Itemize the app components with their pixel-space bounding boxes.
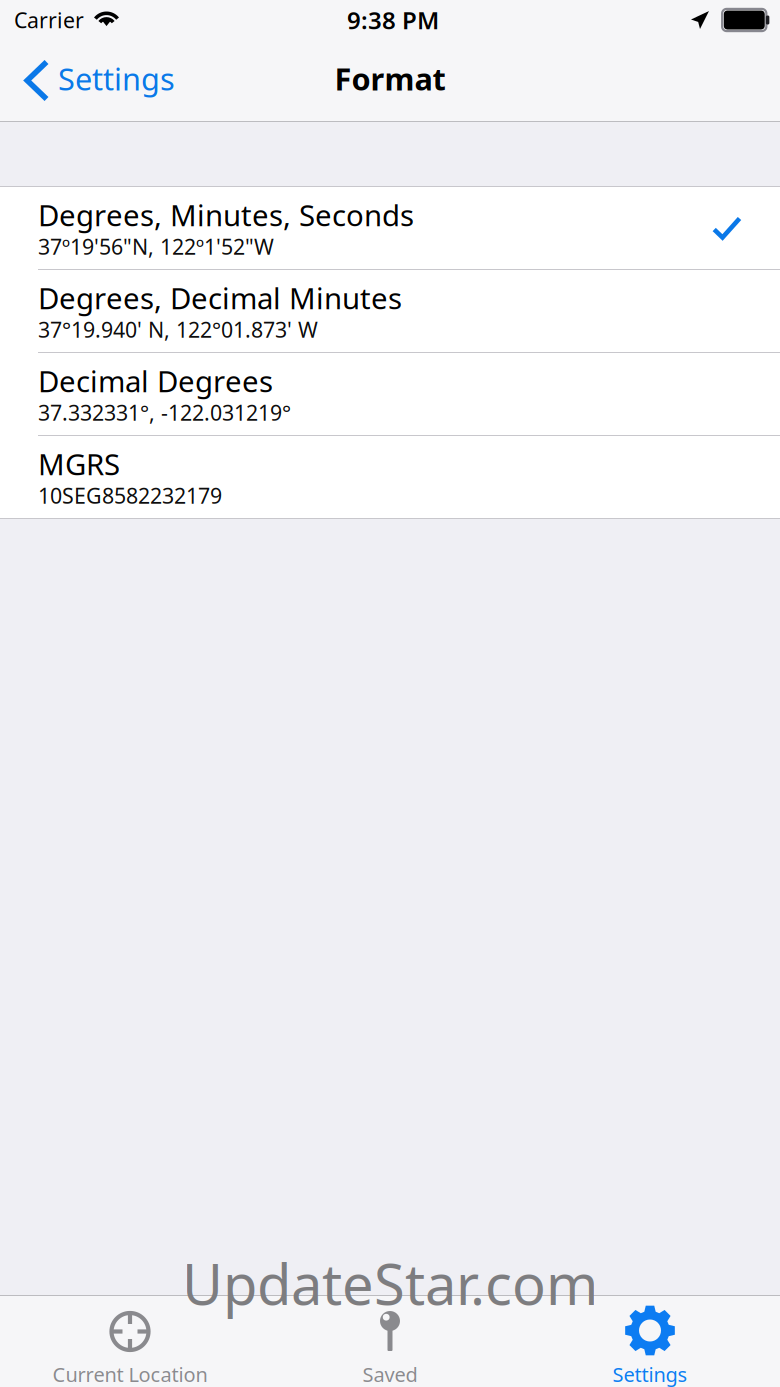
button[interactable]: Back to Settings: [0, 40, 189, 121]
staticText: 37°19.940' N, 122°01.873' W: [38, 315, 318, 344]
staticText: 37.332331°, -122.031219°: [38, 398, 291, 427]
staticText: Degrees, Minutes, Seconds: [38, 195, 414, 234]
staticText: Degrees, Decimal Minutes: [38, 278, 402, 317]
staticText: Carrier: [14, 6, 84, 34]
button[interactable]: Current Location: [0, 1295, 260, 1387]
button[interactable]: Degrees, Decimal Minutes: [0, 270, 780, 352]
staticText: Current Location: [52, 1361, 207, 1387]
staticText: Saved: [362, 1361, 417, 1387]
button[interactable]: Decimal Degrees: [0, 353, 780, 435]
staticText: Settings: [612, 1361, 687, 1387]
button[interactable]: MGRS: [0, 436, 780, 518]
button[interactable]: Saved: [260, 1295, 520, 1387]
button[interactable]: Degrees, Minutes, Seconds: [0, 187, 780, 269]
staticText: 37º19'56"N, 122º1'52"W: [38, 232, 274, 261]
staticText: Settings: [58, 58, 175, 99]
staticText: Decimal Degrees: [38, 361, 273, 400]
staticText: 10SEG8582232179: [38, 481, 222, 510]
staticText: 9:38 PM: [347, 4, 439, 36]
staticText: UpdateStar.com: [182, 1246, 598, 1320]
staticText: Format: [334, 58, 445, 99]
staticText: MGRS: [38, 444, 120, 483]
button[interactable]: Settings: [520, 1295, 780, 1387]
